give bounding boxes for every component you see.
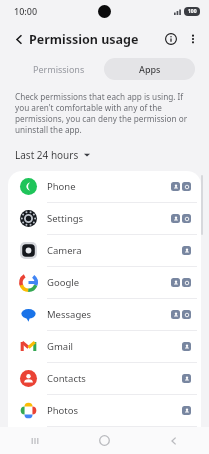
- button[interactable]: Contacts: [8, 363, 201, 394]
- button[interactable]: Apps: [104, 58, 195, 80]
- staticText: Settings: [47, 212, 171, 225]
- button[interactable]: Photos: [8, 395, 201, 426]
- button[interactable]: Settings: [8, 203, 201, 234]
- staticText: Messages: [47, 308, 171, 321]
- button[interactable]: Permissions: [14, 58, 104, 80]
- button[interactable]: Back: [139, 427, 209, 454]
- button[interactable]: Camera: [8, 235, 201, 266]
- staticText: Check permissions that each app is using…: [15, 91, 196, 135]
- staticText: Apps: [139, 63, 161, 75]
- button[interactable]: Recents: [0, 427, 69, 454]
- staticText: Phone: [47, 180, 171, 193]
- button[interactable]: Last 24 hours: [13, 146, 92, 164]
- staticText: Gmail: [47, 340, 182, 353]
- staticText: Meet: [47, 434, 182, 447]
- button[interactable]: Messages: [8, 299, 201, 330]
- button[interactable]: Google: [8, 267, 201, 298]
- staticText: Camera: [47, 244, 182, 257]
- staticText: Permission usage: [29, 31, 139, 48]
- button[interactable]: Gmail: [8, 331, 201, 362]
- staticText: Google: [47, 276, 171, 289]
- staticText: Photos: [47, 404, 182, 417]
- button[interactable]: Meet: [8, 427, 201, 454]
- staticText: 100: [188, 8, 197, 15]
- staticText: Contacts: [47, 372, 182, 385]
- button[interactable]: More options: [182, 28, 204, 50]
- button[interactable]: Back: [8, 28, 30, 50]
- button[interactable]: Home: [69, 427, 139, 454]
- staticText: Last 24 hours: [15, 148, 79, 162]
- button[interactable]: Phone: [8, 171, 201, 202]
- button[interactable]: Information: [160, 28, 182, 50]
- staticText: 10:00: [14, 5, 38, 17]
- staticText: Permissions: [33, 63, 85, 75]
